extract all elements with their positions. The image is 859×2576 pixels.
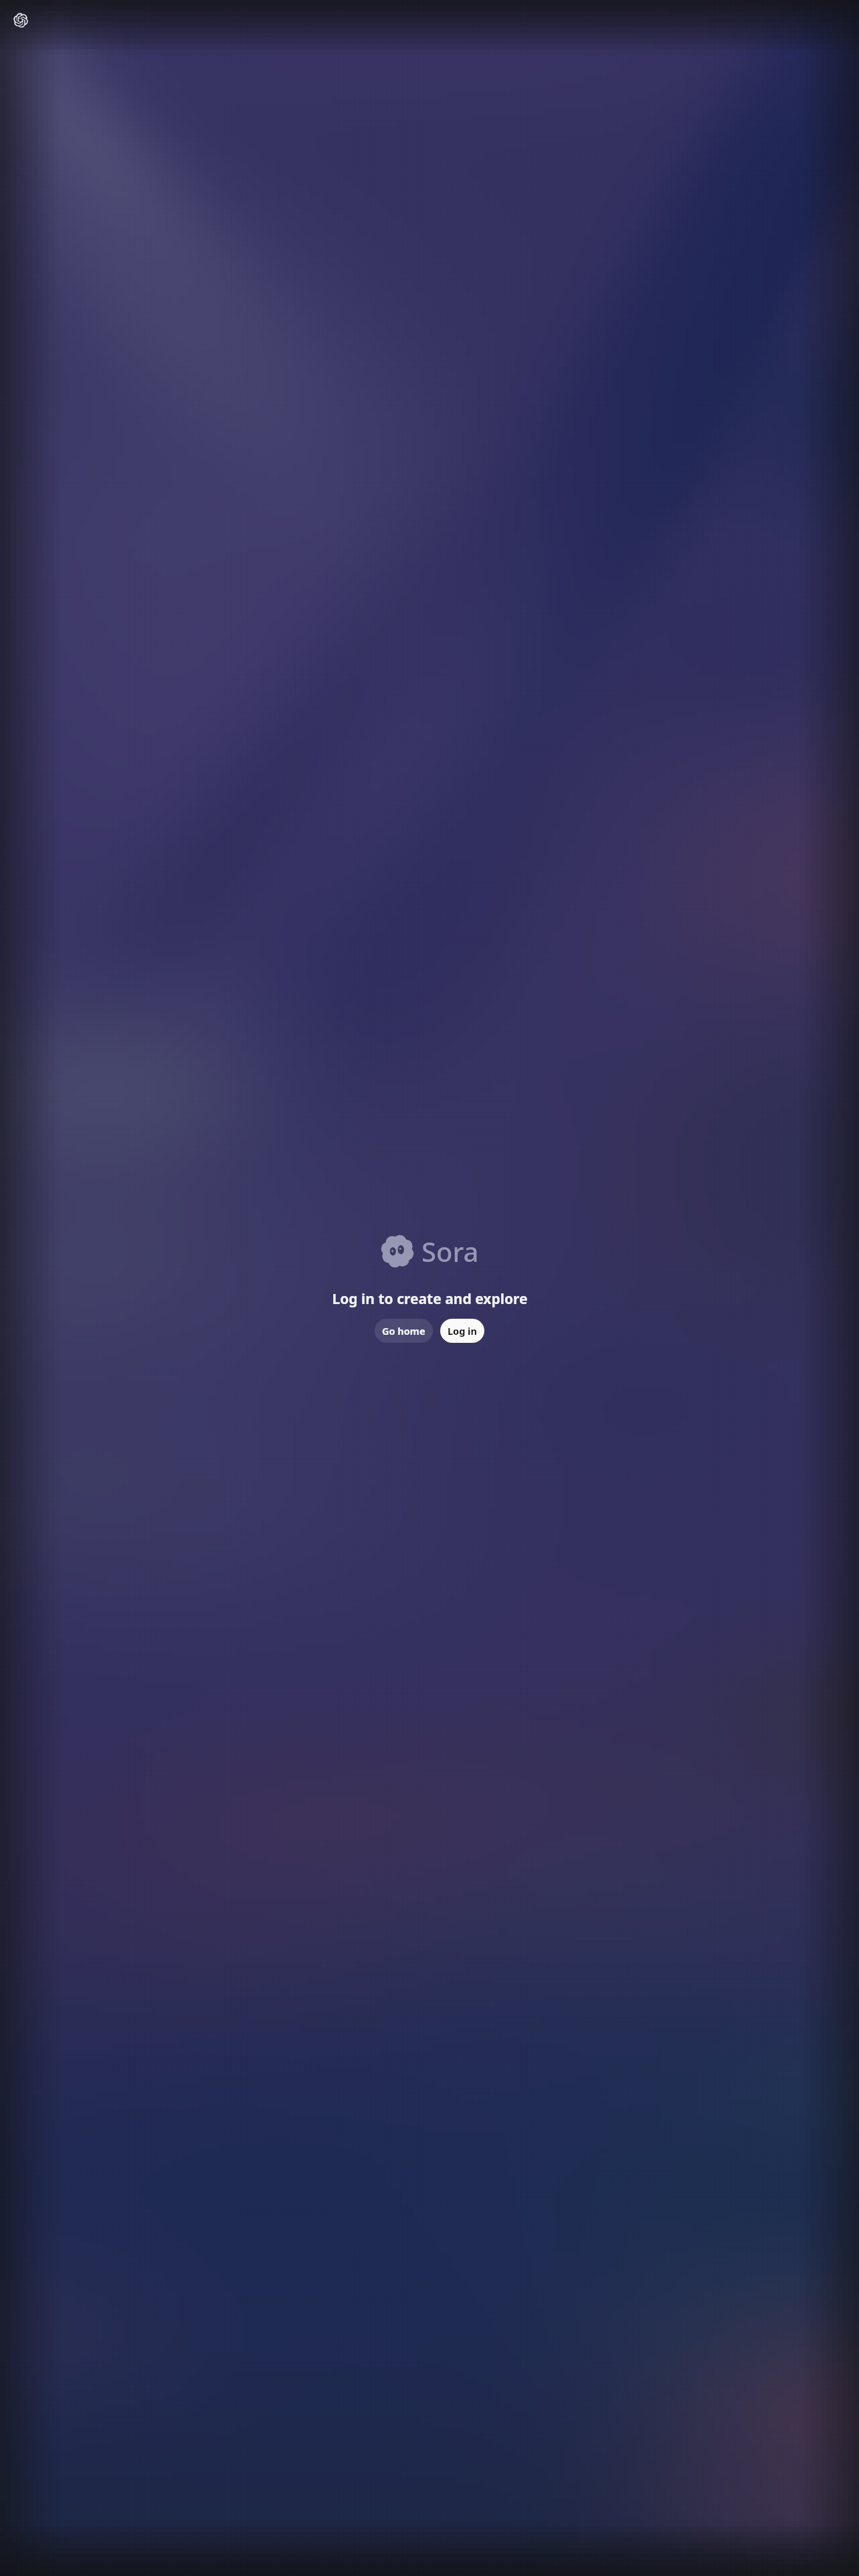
staticText: Sora: [421, 1233, 479, 1269]
staticText: Go home: [382, 1324, 425, 1337]
button[interactable]: Log in: [440, 1319, 484, 1343]
staticText: Log in: [448, 1324, 477, 1337]
button[interactable]: Go home: [375, 1319, 433, 1343]
button[interactable]: OpenAI: [6, 6, 34, 34]
staticText: Log in to create and explore: [332, 1289, 528, 1309]
